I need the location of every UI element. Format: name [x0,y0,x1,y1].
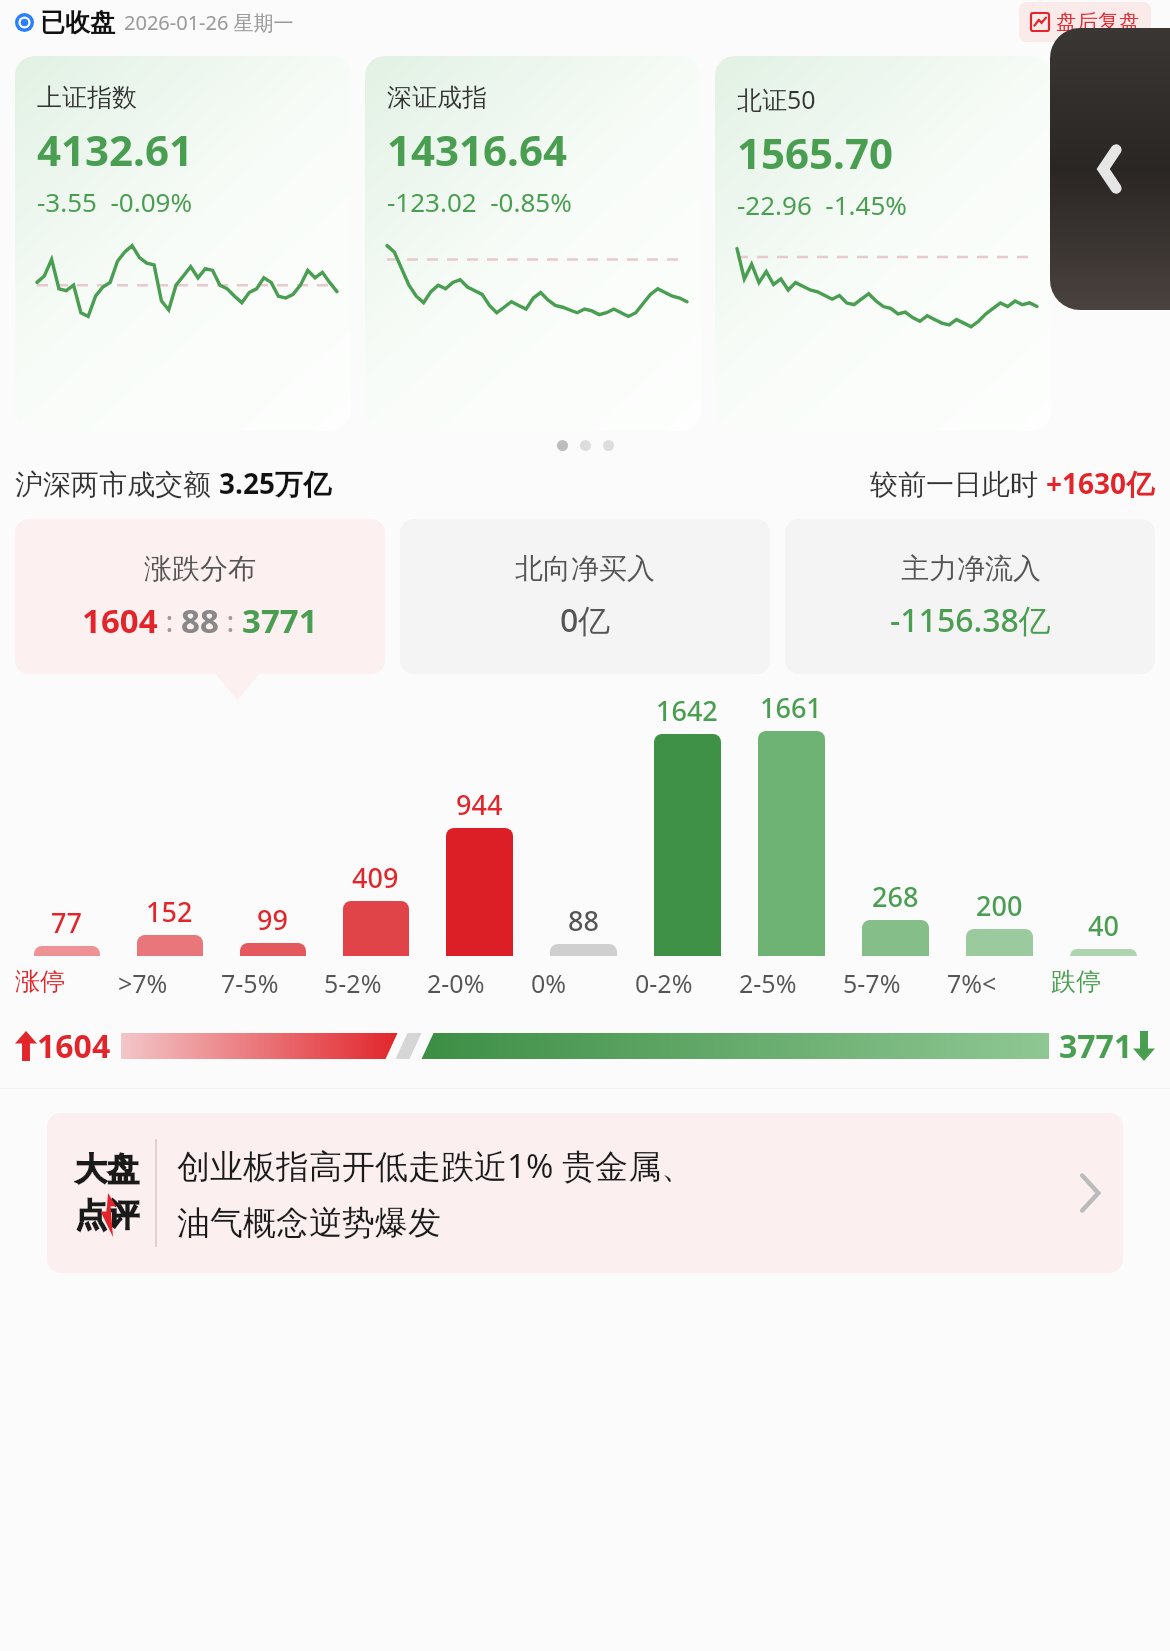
staticText: 2-5% [739,966,843,1000]
staticText: -3.55 -0.09% [37,184,193,219]
staticText: 7-5% [221,966,324,1000]
staticText: -123.02 -0.85% [387,184,572,219]
staticText: 北证50 [737,82,816,116]
staticText: 88 [568,902,599,939]
staticText: +1630亿 [1046,464,1155,502]
button[interactable]: 上证指数 [15,56,351,431]
staticText: : [158,601,181,640]
staticText: 2026-01-26 星期一 [124,9,294,36]
staticText: 创业板指高开低走跌近1% 贵金属、 [177,1143,694,1188]
button[interactable]: 盘后复盘 [1019,2,1151,42]
staticText: 点评 [75,1195,139,1235]
staticText: 2-0% [427,966,531,1000]
staticText: 3771 [242,598,318,643]
staticText: 3771 [1059,1024,1133,1068]
staticText: 200 [976,887,1023,924]
staticText: 4132.61 [37,121,193,178]
staticText: 77 [51,904,82,941]
staticText: 主力净流入 [901,551,1041,586]
staticText: 1642 [656,692,718,729]
staticText: >7% [118,966,221,1000]
staticText: 409 [352,859,399,896]
staticText: 北向净买入 [515,551,655,586]
staticText: -1156.38亿 [890,598,1051,642]
button[interactable]: 大盘 [47,1113,1123,1273]
staticText: 88 [181,598,219,643]
staticText: 油气概念逆势爆发 [177,1202,441,1244]
staticText: 1604 [37,1024,111,1068]
staticText: 152 [146,893,193,930]
staticText: -22.96 -1.45% [737,187,907,222]
button[interactable]: 涨跌分布 [15,519,385,674]
button[interactable]: 北证50 [715,56,1051,431]
staticText: 14316.64 [387,121,567,178]
staticText: 盘后复盘 [1056,9,1140,35]
staticText: 99 [257,901,288,938]
staticText: 已收盘 [40,7,115,38]
button[interactable]: 主力净流入 [785,519,1155,674]
staticText: 跌停 [1051,966,1155,997]
staticText: 944 [456,786,503,823]
staticText: 1604 [82,598,158,643]
staticText: 5-7% [843,966,947,1000]
button[interactable]: 北向净买入 [400,519,770,674]
staticText: 268 [872,878,919,915]
staticText: 涨跌分布 [144,551,256,586]
staticText: 0亿 [560,598,611,642]
other: More [1077,1170,1103,1216]
staticText: 较前一日此时 [870,464,1046,502]
staticText: 1661 [760,689,822,726]
button[interactable]: Expand panel [1050,28,1170,310]
staticText: 大盘 [75,1149,139,1189]
staticText: 上证指数 [37,82,137,113]
staticText: : [219,601,242,640]
button[interactable]: 深证成指 [365,56,701,431]
staticText: 0% [531,966,635,1000]
staticText: 深证成指 [387,82,487,113]
staticText: 7%< [947,966,1051,1000]
staticText: 3.25万亿 [219,464,331,502]
staticText: 沪深两市成交额 [15,464,219,502]
staticText: 1565.70 [737,124,893,181]
staticText: 涨停 [15,966,118,997]
staticText: 5-2% [324,966,427,1000]
staticText: 40 [1088,907,1119,944]
staticText: 0-2% [635,966,739,1000]
